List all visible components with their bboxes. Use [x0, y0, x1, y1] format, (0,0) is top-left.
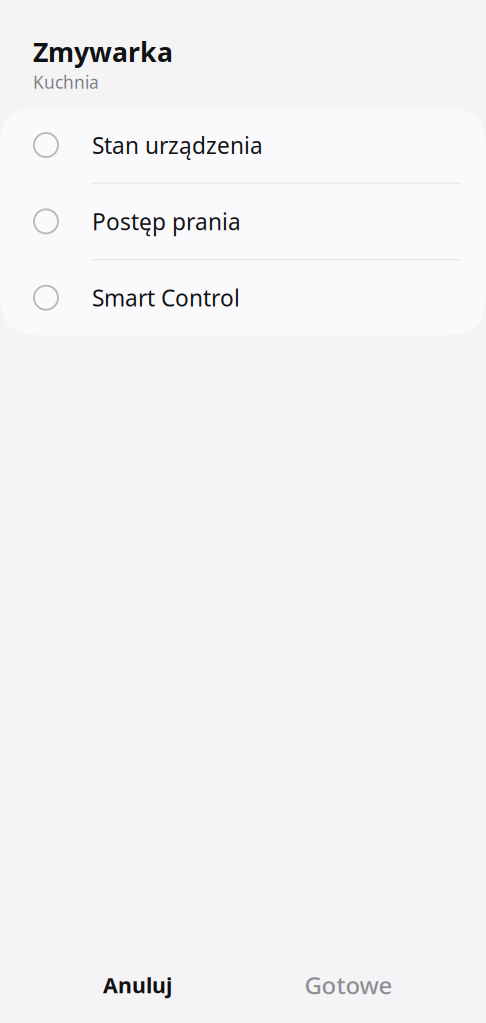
button[interactable]: Postęp prania — [0, 184, 486, 259]
staticText: Gotowe — [304, 969, 392, 1001]
button[interactable]: Smart Control — [0, 260, 486, 335]
staticText: Anuluj — [103, 971, 172, 999]
button[interactable]: Anuluj — [32, 957, 243, 1013]
button[interactable]: Stan urządzenia — [0, 107, 486, 183]
staticText: Stan urządzenia — [92, 130, 263, 160]
staticText: Zmywarka — [33, 34, 173, 69]
staticText: Kuchnia — [33, 70, 99, 93]
button[interactable]: Gotowe — [243, 957, 454, 1013]
staticText: Postęp prania — [92, 206, 241, 236]
staticText: Smart Control — [92, 283, 240, 313]
